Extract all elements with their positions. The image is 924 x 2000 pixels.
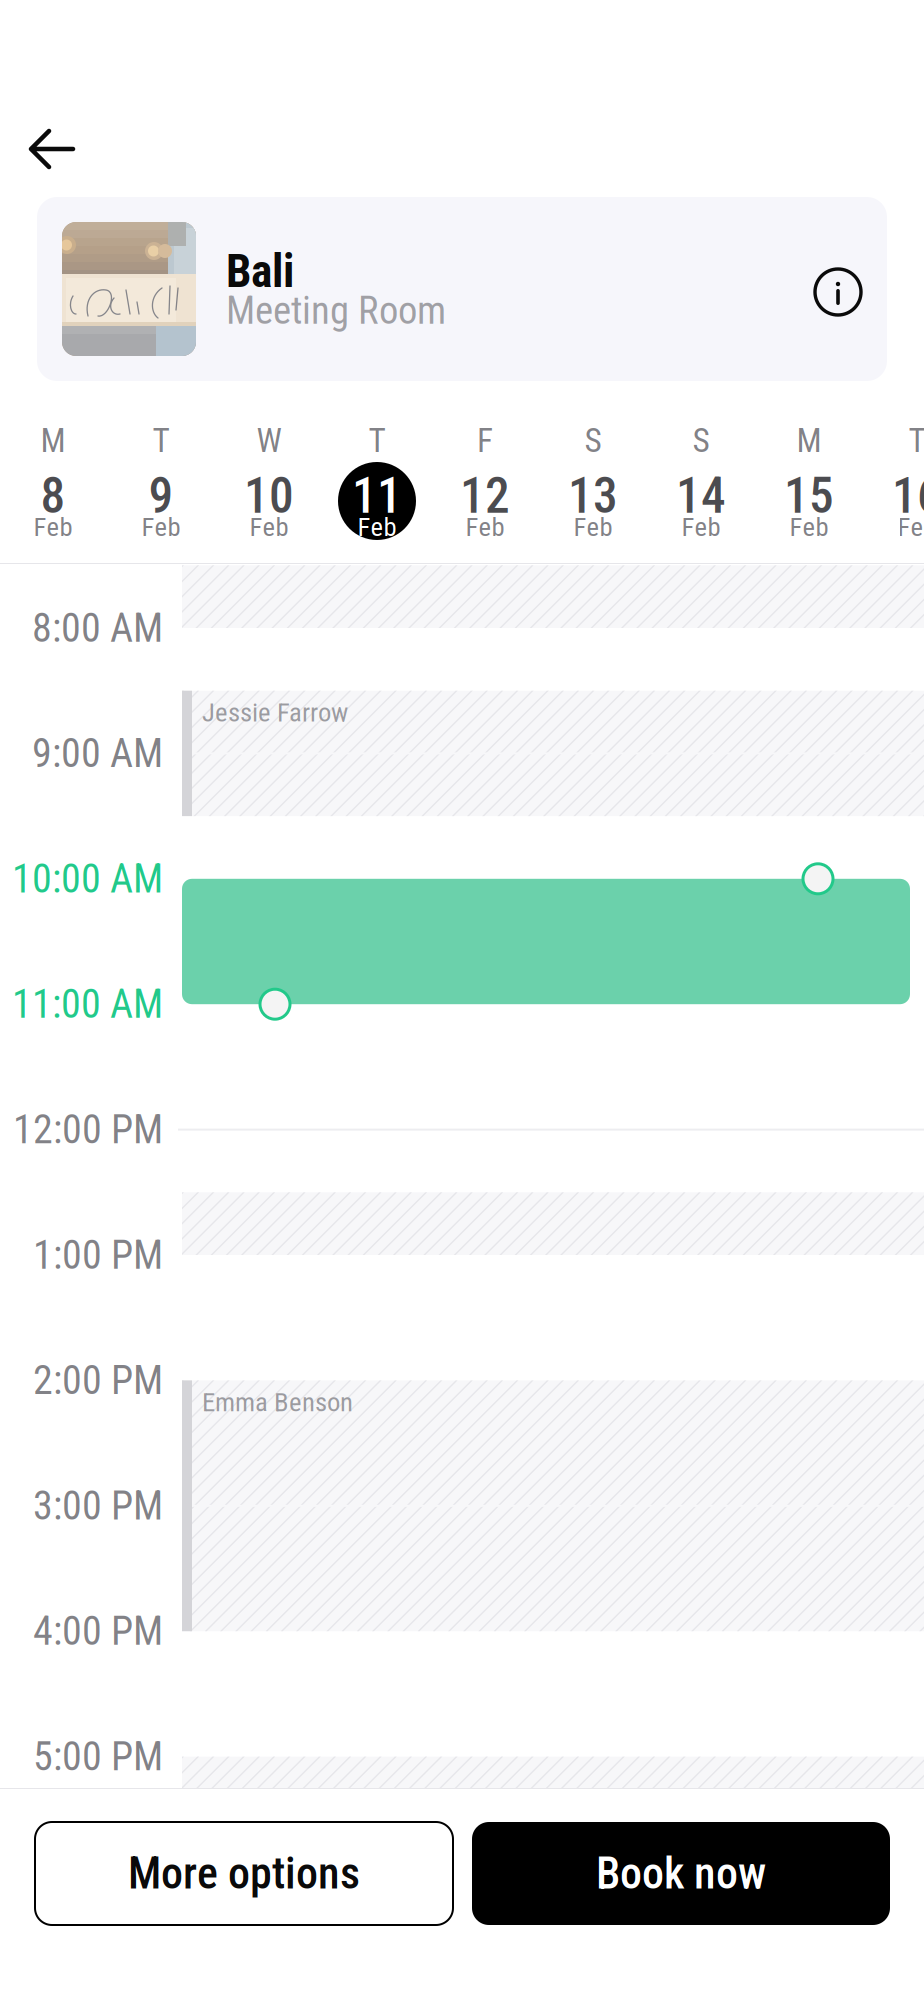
staticText: Jessie Farrow <box>202 697 348 728</box>
staticText: 11 <box>352 467 402 525</box>
button[interactable]: T <box>863 417 924 545</box>
staticText: Feb <box>789 511 828 543</box>
staticText: Feb <box>897 511 924 543</box>
staticText: 14 <box>676 467 726 525</box>
staticText: M <box>796 421 821 460</box>
staticText: 12:00 PM <box>13 1106 163 1153</box>
staticText: Feb <box>33 511 72 543</box>
button[interactable]: F <box>431 417 539 545</box>
staticText: M <box>40 421 65 460</box>
staticText: Feb <box>357 511 396 543</box>
staticText: Feb <box>465 511 504 543</box>
staticText: 1:00 PM <box>33 1232 163 1278</box>
staticText: 15 <box>784 467 834 525</box>
button[interactable]: T <box>323 417 431 545</box>
staticText: 2:00 PM <box>33 1357 163 1404</box>
staticText: T <box>908 421 924 460</box>
staticText: Emma Benson <box>202 1386 353 1418</box>
staticText: W <box>256 421 281 460</box>
staticText: 5:00 PM <box>33 1733 163 1780</box>
staticText: Bali <box>226 245 294 298</box>
button[interactable]: Room information <box>801 255 875 329</box>
button[interactable]: Book now <box>472 1822 890 1925</box>
staticText: Feb <box>681 511 720 543</box>
button[interactable]: M <box>755 417 863 545</box>
staticText: 8:00 AM <box>32 605 163 651</box>
staticText: 4:00 PM <box>33 1608 163 1655</box>
staticText: 12 <box>460 467 510 525</box>
staticText: 11:00 AM <box>12 981 163 1028</box>
staticText: More options <box>128 1848 360 1899</box>
staticText: 13 <box>568 467 618 525</box>
staticText: Feb <box>573 511 612 543</box>
staticText: Book now <box>596 1848 766 1899</box>
staticText: S <box>692 421 709 460</box>
staticText: T <box>152 421 169 460</box>
staticText: Feb <box>249 511 288 543</box>
button[interactable]: W <box>215 417 323 545</box>
button[interactable]: S <box>647 417 755 545</box>
staticText: 8 <box>40 467 65 525</box>
button[interactable]: More options <box>35 1822 453 1925</box>
button[interactable]: Bali <box>37 197 887 381</box>
staticText: 16 <box>892 467 924 525</box>
button[interactable]: S <box>539 417 647 545</box>
staticText: Feb <box>141 511 180 543</box>
button[interactable]: T <box>107 417 215 545</box>
button[interactable]: Selected time 10:00 AM to 11:00 AM <box>182 879 910 1004</box>
staticText: Meeting Room <box>226 288 446 333</box>
staticText: F <box>477 421 493 460</box>
staticText: 9 <box>148 467 173 525</box>
button[interactable]: Back <box>8 110 96 190</box>
staticText: 9:00 AM <box>32 730 163 777</box>
staticText: S <box>584 421 601 460</box>
staticText: 3:00 PM <box>33 1482 163 1529</box>
staticText: 10 <box>244 467 294 525</box>
staticText: 10:00 AM <box>12 855 163 902</box>
button[interactable]: M <box>0 417 107 545</box>
staticText: T <box>368 421 385 460</box>
